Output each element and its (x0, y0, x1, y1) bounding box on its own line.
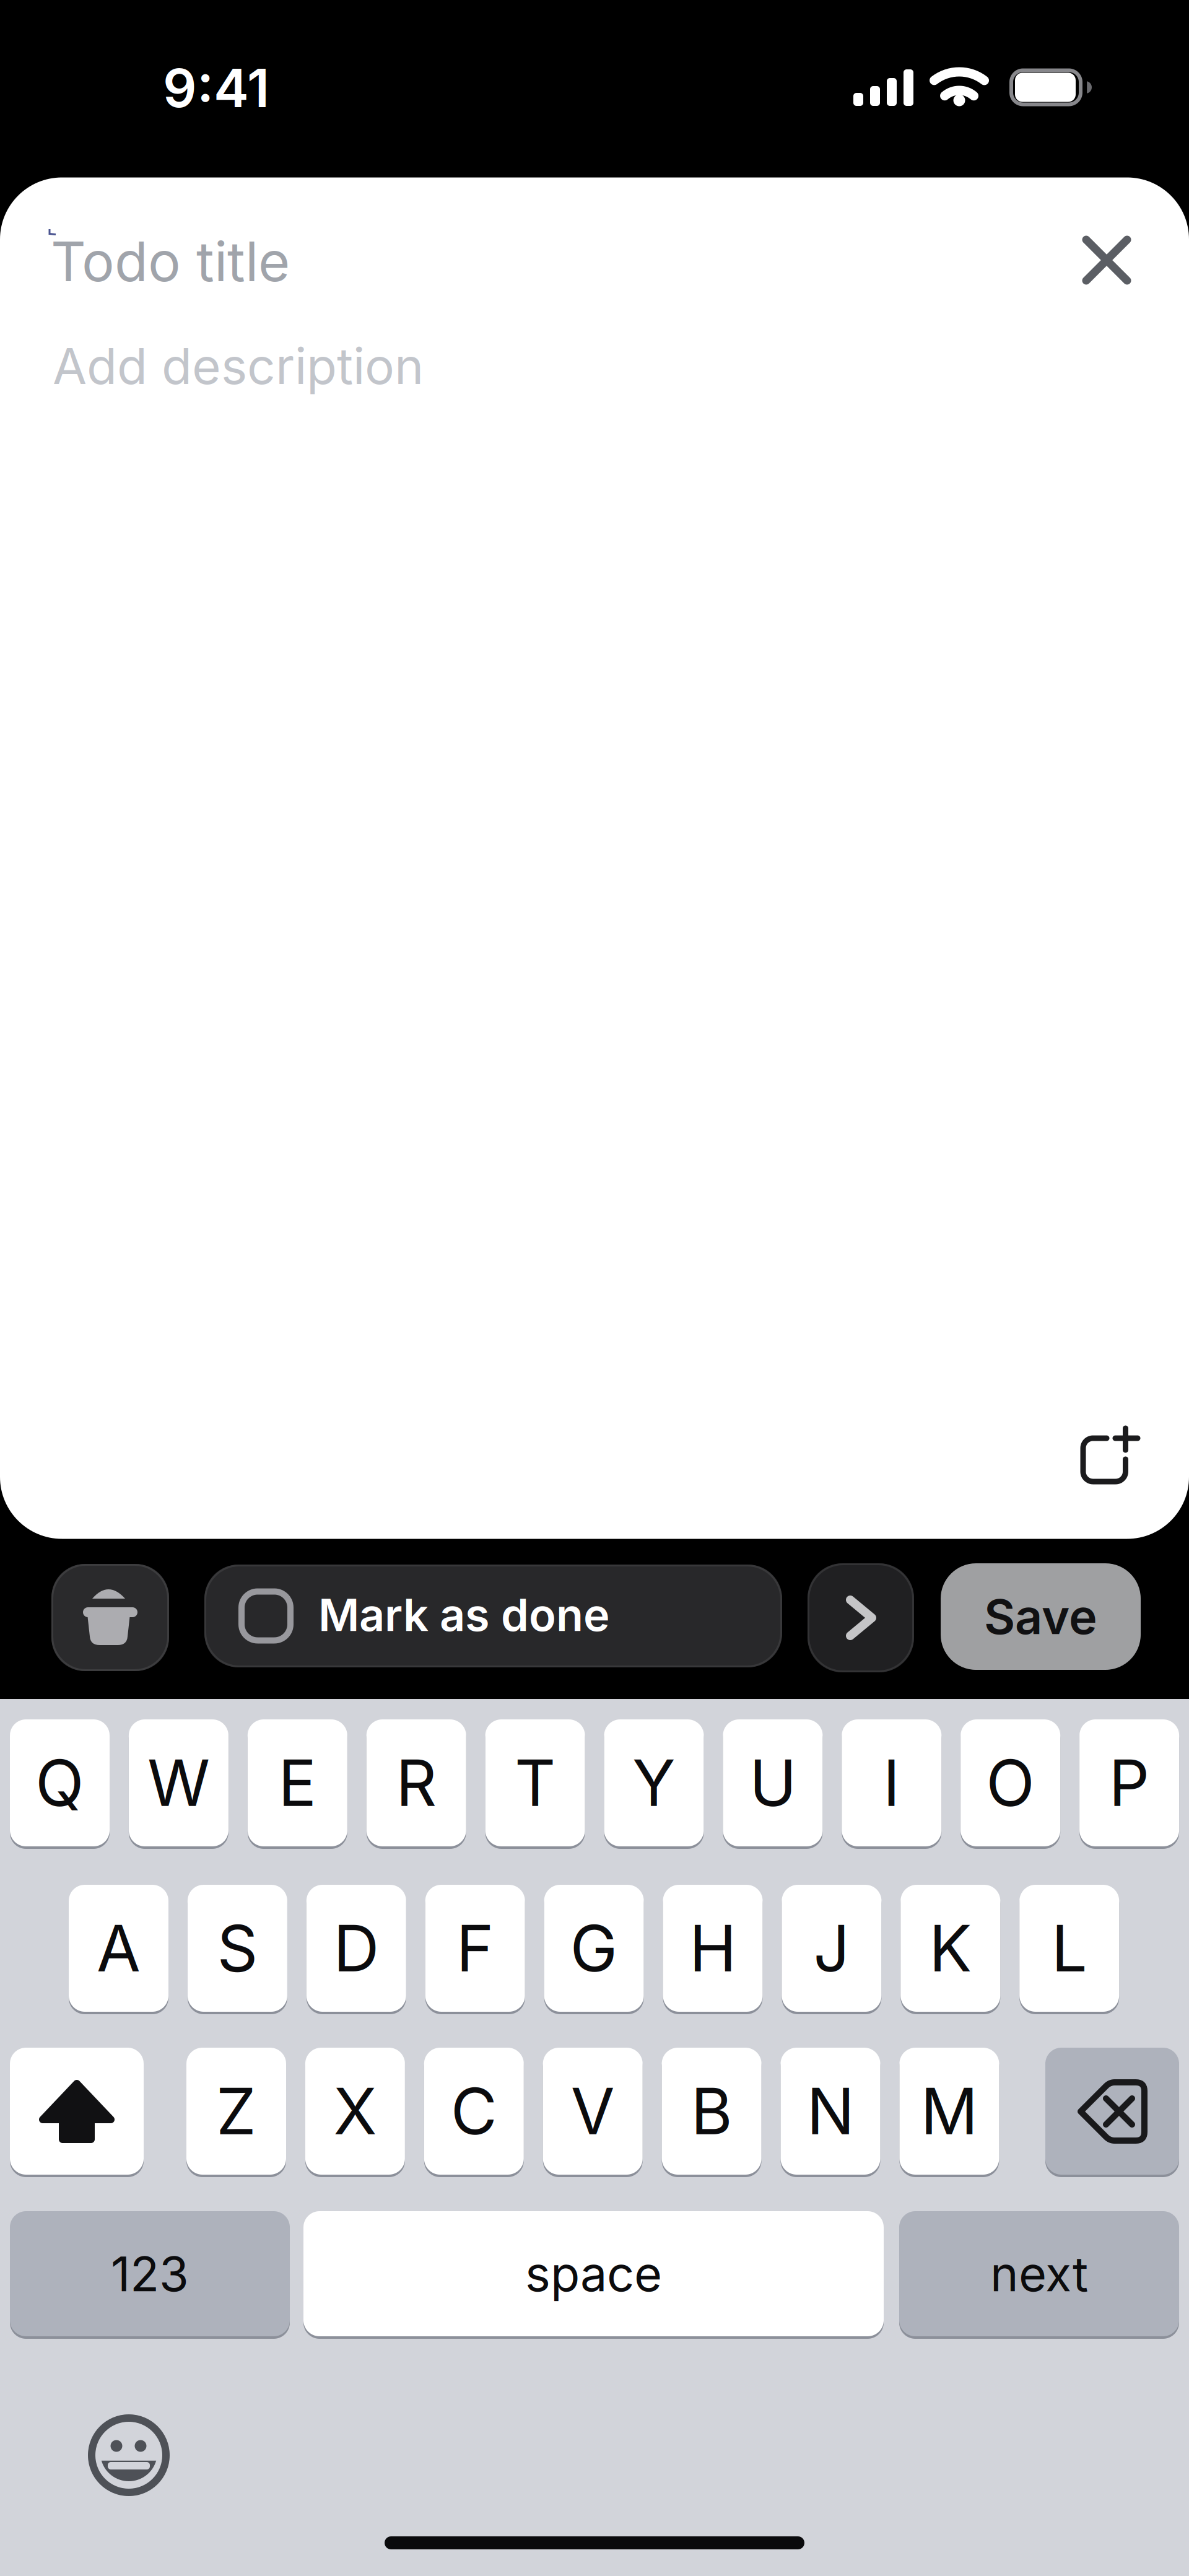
staticText: X (333, 2073, 377, 2150)
button[interactable]: More (808, 1563, 914, 1672)
staticText: T (515, 1744, 556, 1821)
staticText: A (97, 1910, 141, 1987)
button[interactable]: D (306, 1884, 406, 2013)
button[interactable]: W (129, 1718, 228, 1848)
button[interactable]: C (424, 2046, 524, 2176)
staticText: space (525, 2245, 662, 2303)
button[interactable]: F (425, 1884, 525, 2013)
button[interactable]: E (248, 1718, 347, 1848)
button[interactable]: I (842, 1718, 941, 1848)
staticText: R (396, 1744, 437, 1821)
staticText: M (920, 2073, 978, 2150)
button[interactable]: U (723, 1718, 823, 1848)
staticText: Q (35, 1744, 84, 1821)
button[interactable]: Y (604, 1718, 704, 1848)
button[interactable]: Add tag (1069, 1409, 1156, 1496)
button[interactable]: Mark as done (204, 1565, 782, 1667)
button[interactable]: L (1019, 1884, 1119, 2013)
staticText: F (456, 1910, 494, 1987)
staticText: B (691, 2073, 732, 2150)
button[interactable]: M (899, 2046, 999, 2176)
button[interactable]: Delete (51, 1564, 169, 1671)
button[interactable]: V (543, 2046, 643, 2176)
button[interactable]: next (899, 2210, 1179, 2338)
button[interactable]: Shift (10, 2048, 144, 2175)
button[interactable]: Save (941, 1563, 1141, 1670)
staticText: Z (216, 2073, 256, 2150)
button[interactable]: P (1079, 1718, 1179, 1848)
staticText: Add description (53, 336, 424, 396)
staticText: V (571, 2073, 615, 2150)
button[interactable]: Todo title (51, 227, 794, 295)
button[interactable]: space (303, 2210, 884, 2338)
button[interactable]: Z (186, 2046, 286, 2176)
staticText: H (689, 1910, 736, 1987)
staticText: Save (984, 1588, 1097, 1646)
staticText: E (278, 1744, 317, 1821)
button[interactable]: O (961, 1718, 1060, 1848)
button[interactable]: J (782, 1884, 881, 2013)
staticText: O (986, 1744, 1035, 1821)
button[interactable]: Q (10, 1718, 110, 1848)
staticText: Mark as done (318, 1588, 610, 1642)
staticText: S (217, 1910, 258, 1987)
button[interactable]: G (544, 1884, 644, 2013)
button[interactable]: S (188, 1884, 287, 2013)
staticText: K (929, 1910, 972, 1987)
button[interactable]: Close (1066, 220, 1147, 300)
staticText: J (813, 1910, 850, 1987)
staticText: N (807, 2073, 854, 2150)
staticText: U (749, 1744, 796, 1821)
button[interactable]: 123 (10, 2210, 290, 2338)
staticText: 9:41 (163, 56, 269, 120)
staticText: D (333, 1910, 379, 1987)
staticText: Y (632, 1744, 676, 1821)
button[interactable]: T (485, 1718, 585, 1848)
button[interactable]: Emoji (79, 2406, 178, 2505)
staticText: L (1051, 1910, 1087, 1987)
staticText: P (1109, 1744, 1150, 1821)
button[interactable]: A (69, 1884, 168, 2013)
button[interactable]: Add description (53, 335, 796, 397)
button[interactable]: X (305, 2046, 405, 2176)
button[interactable]: N (781, 2046, 880, 2176)
staticText: W (147, 1744, 210, 1821)
staticText: G (570, 1910, 618, 1987)
staticText: Todo title (51, 228, 290, 294)
staticText: C (451, 2073, 497, 2150)
staticText: I (883, 1744, 900, 1821)
staticText: 123 (111, 2245, 189, 2303)
button[interactable]: Delete (1045, 2048, 1179, 2175)
button[interactable]: K (901, 1884, 1000, 2013)
button[interactable]: R (366, 1718, 466, 1848)
button[interactable]: B (662, 2046, 761, 2176)
button[interactable]: H (663, 1884, 763, 2013)
staticText: next (990, 2245, 1088, 2303)
